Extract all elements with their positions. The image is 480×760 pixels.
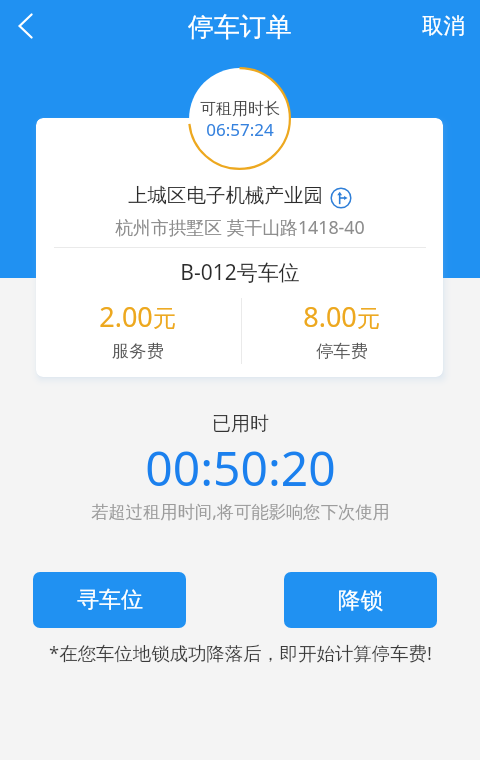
staticText: 元 — [153, 304, 176, 333]
staticText: 服务费 — [112, 340, 164, 362]
button[interactable]: Navigate — [330, 187, 352, 209]
staticText: 上城区电子机械产业园 — [128, 183, 323, 208]
staticText: 06:57:24 — [206, 118, 274, 141]
staticText: 2.00 — [99, 298, 153, 335]
button[interactable]: 取消 — [414, 8, 472, 42]
staticText: 停车费 — [316, 340, 368, 362]
staticText: 可租用时长 — [200, 99, 280, 119]
staticText: *在您车位地锁成功降落后，即开始计算停车费! — [49, 640, 432, 665]
staticText: 元 — [357, 304, 380, 333]
button[interactable]: Back — [2, 2, 50, 50]
staticText: 寻车位 — [77, 586, 143, 614]
staticText: 降锁 — [338, 586, 383, 614]
button[interactable]: 寻车位 — [33, 572, 186, 628]
staticText: 已用时 — [212, 412, 269, 436]
staticText: 杭州市拱墅区 莫干山路1418-40 — [115, 215, 365, 239]
staticText: 若超过租用时间,将可能影响您下次使用 — [91, 500, 390, 524]
staticText: 00:50:20 — [145, 435, 336, 500]
staticText: 取消 — [422, 12, 465, 39]
staticText: B-012号车位 — [180, 258, 300, 287]
button[interactable]: 降锁 — [284, 572, 437, 628]
staticText: 停车订单 — [188, 11, 292, 44]
staticText: 8.00 — [303, 298, 357, 335]
